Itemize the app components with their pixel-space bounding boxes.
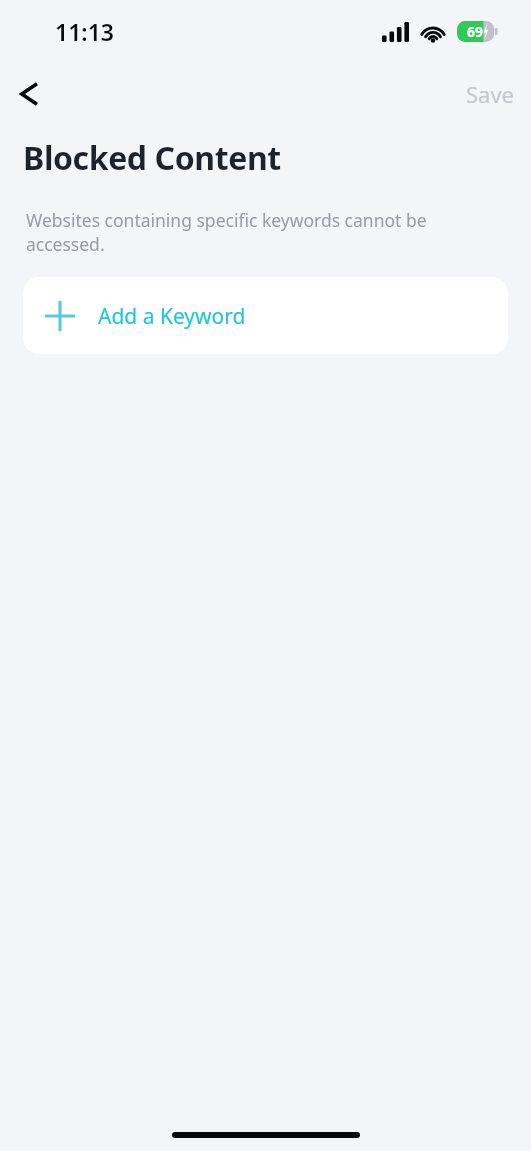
staticText: Websites containing specific keywords ca…: [26, 208, 471, 256]
staticText: 69: [467, 22, 484, 41]
staticText: Add a Keyword: [98, 302, 246, 331]
button[interactable]: Back: [8, 71, 54, 117]
staticText: Blocked Content: [23, 136, 281, 180]
button[interactable]: Add a Keyword: [23, 277, 508, 354]
staticText: 11:13: [55, 16, 114, 47]
staticText: Save: [466, 79, 515, 109]
button[interactable]: Save: [466, 79, 515, 109]
